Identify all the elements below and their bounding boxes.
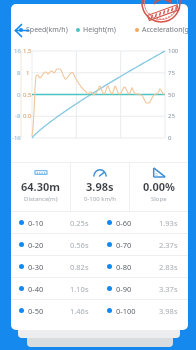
- button[interactable]: 0-40: [11, 278, 99, 299]
- staticText: 2.83s: [159, 262, 178, 272]
- staticText: 50: [168, 91, 175, 99]
- staticText: 8: [17, 69, 21, 77]
- button[interactable]: 3.98s: [71, 163, 129, 211]
- staticText: 0-50: [28, 306, 44, 316]
- staticText: 0.5: [23, 91, 32, 99]
- staticText: 0-30: [28, 262, 44, 272]
- button[interactable]: 64.30m: [11, 163, 70, 211]
- staticText: 0-40: [28, 284, 44, 294]
- staticText: Height(m): [83, 25, 116, 35]
- button[interactable]: 0-20: [11, 234, 99, 255]
- button[interactable]: 0-90: [99, 278, 188, 299]
- staticText: 100: [168, 47, 179, 55]
- staticText: 3.98s: [159, 306, 178, 316]
- staticText: 0: [168, 134, 172, 142]
- staticText: 0-70: [116, 240, 132, 250]
- staticText: 16: [14, 47, 21, 55]
- staticText: 1: [26, 69, 30, 77]
- staticText: 0.00%: [143, 179, 175, 194]
- button[interactable]: 0-60: [99, 212, 188, 233]
- staticText: 0-100: [116, 306, 136, 316]
- staticText: 0-90: [116, 284, 132, 294]
- staticText: 0.56s: [70, 240, 89, 250]
- button[interactable]: 0-80: [99, 256, 188, 277]
- staticText: Slope: [151, 195, 167, 203]
- staticText: -8: [15, 112, 21, 120]
- button[interactable]: 0-100: [99, 300, 188, 321]
- staticText: Speed(km/h): [26, 25, 68, 35]
- staticText: 64.30m: [21, 179, 60, 194]
- staticText: -16: [12, 134, 21, 142]
- staticText: 2.37s: [159, 240, 178, 250]
- staticText: 25: [168, 112, 175, 120]
- staticText: 3.98s: [86, 179, 114, 194]
- staticText: 0.0: [23, 112, 32, 120]
- staticText: 0-100 km/h: [84, 195, 116, 203]
- button[interactable]: 0.00%: [130, 163, 188, 211]
- staticText: 1.10s: [70, 284, 89, 294]
- staticText: 0-80: [116, 262, 132, 272]
- staticText: 0-20: [28, 240, 44, 250]
- button[interactable]: 0-10: [11, 212, 99, 233]
- staticText: 0: [17, 91, 21, 99]
- staticText: Acceleration(g): [142, 25, 188, 35]
- staticText: 1.5: [23, 47, 32, 55]
- button[interactable]: 0-50: [11, 300, 99, 321]
- staticText: Distance(m): [24, 195, 58, 203]
- staticText: 0.82s: [70, 262, 89, 272]
- staticText: 1.46s: [70, 306, 89, 316]
- staticText: 75: [168, 69, 175, 77]
- button[interactable]: Back: [13, 22, 30, 39]
- staticText: 0.25s: [70, 218, 89, 228]
- staticText: 3.37s: [159, 284, 178, 294]
- staticText: 0-60: [116, 218, 132, 228]
- staticText: 0-10: [28, 218, 44, 228]
- button[interactable]: 0-70: [99, 234, 188, 255]
- staticText: 1.93s: [159, 218, 178, 228]
- button[interactable]: 0-30: [11, 256, 99, 277]
